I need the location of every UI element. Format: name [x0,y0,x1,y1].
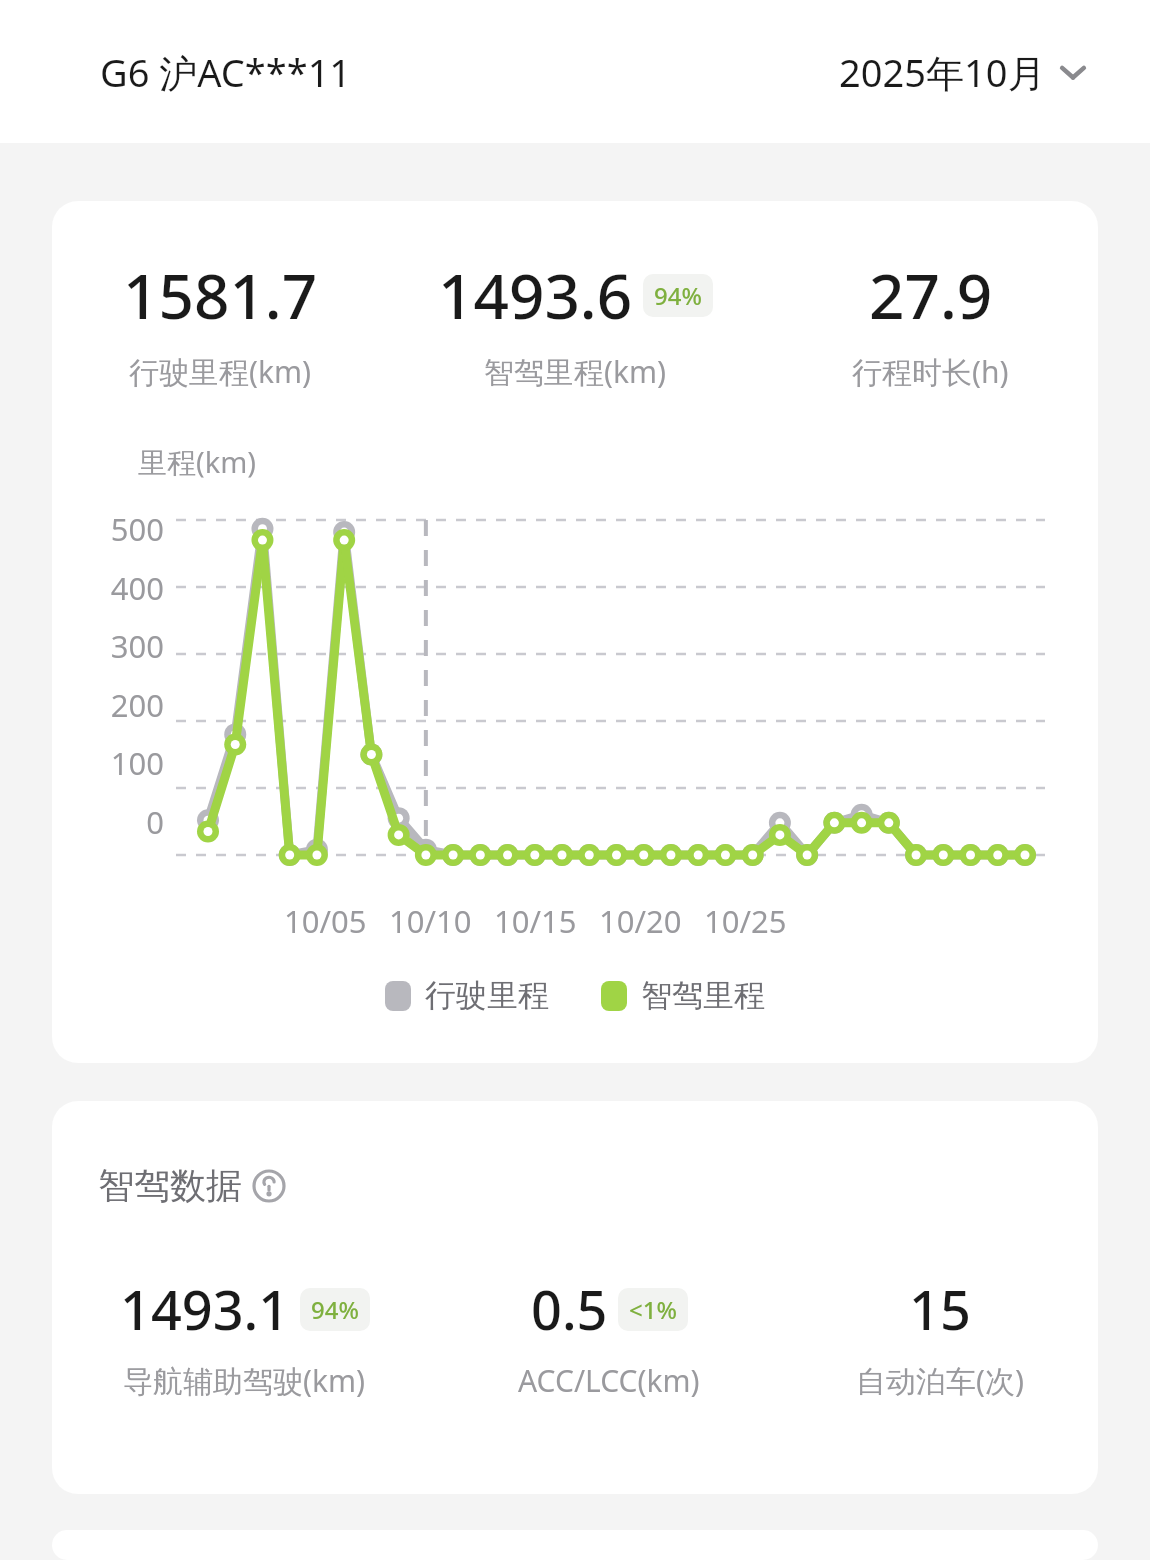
staticText: 行驶里程(km) [129,351,312,392]
staticText: 2025年10月 [839,46,1046,98]
staticText: 1493.1 [120,1272,290,1346]
staticText: 里程(km) [138,442,257,482]
staticText: 导航辅助驾驶(km) [123,1360,366,1401]
staticText: 行程时长(h) [852,351,1009,392]
button[interactable]: 2025年10月 [839,46,1090,98]
staticText: ACC/LCC(km) [518,1360,700,1401]
staticText: G6 沪AC***11 [100,46,352,98]
staticText: 15 [909,1272,971,1346]
staticText: 10/20 [599,900,682,942]
staticText: 400 [110,567,164,609]
staticText: 智驾里程 [641,976,765,1015]
staticText: 27.9 [869,253,993,337]
other: Help about 智驾数据 [252,1169,286,1203]
staticText: 1493.6 [438,253,633,337]
button[interactable]: G6 沪AC***11 [100,46,352,98]
button[interactable]: 智驾数据 [52,1101,1098,1494]
staticText: 100 [110,742,164,784]
staticText: 500 [110,508,164,550]
staticText: 200 [110,684,164,726]
staticText: 10/15 [494,900,577,942]
staticText: 0.5 [531,1272,608,1346]
button[interactable]: 智驾数据 [98,1163,286,1208]
staticText: 10/05 [284,900,367,942]
staticText: 10/10 [389,900,472,942]
other: Select month [1056,55,1090,89]
staticText: 智驾里程(km) [484,351,667,392]
staticText: 0 [146,801,164,843]
staticText: 行驶里程 [425,976,549,1015]
button[interactable]: 1581.7 [52,201,1098,1063]
staticText: 智驾数据 [98,1163,242,1208]
staticText: 1581.7 [123,253,318,337]
staticText: <1% [629,1293,677,1326]
staticText: 94% [654,279,702,312]
staticText: 自动泊车(次) [856,1360,1024,1401]
staticText: 300 [110,625,164,667]
staticText: 94% [311,1293,359,1326]
staticText: 10/25 [704,900,787,942]
